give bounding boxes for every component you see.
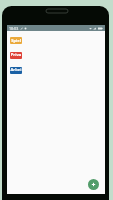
staticText: Arbeit (10, 67, 22, 74)
button[interactable]: Add (88, 179, 99, 190)
staticText: Spiel (11, 38, 21, 44)
staticText: Privat (10, 52, 22, 59)
button[interactable]: Arbeit (10, 67, 22, 74)
button[interactable]: Privat (10, 52, 22, 59)
staticText: 18:03 (9, 26, 19, 31)
button[interactable]: Spiel (10, 37, 22, 44)
